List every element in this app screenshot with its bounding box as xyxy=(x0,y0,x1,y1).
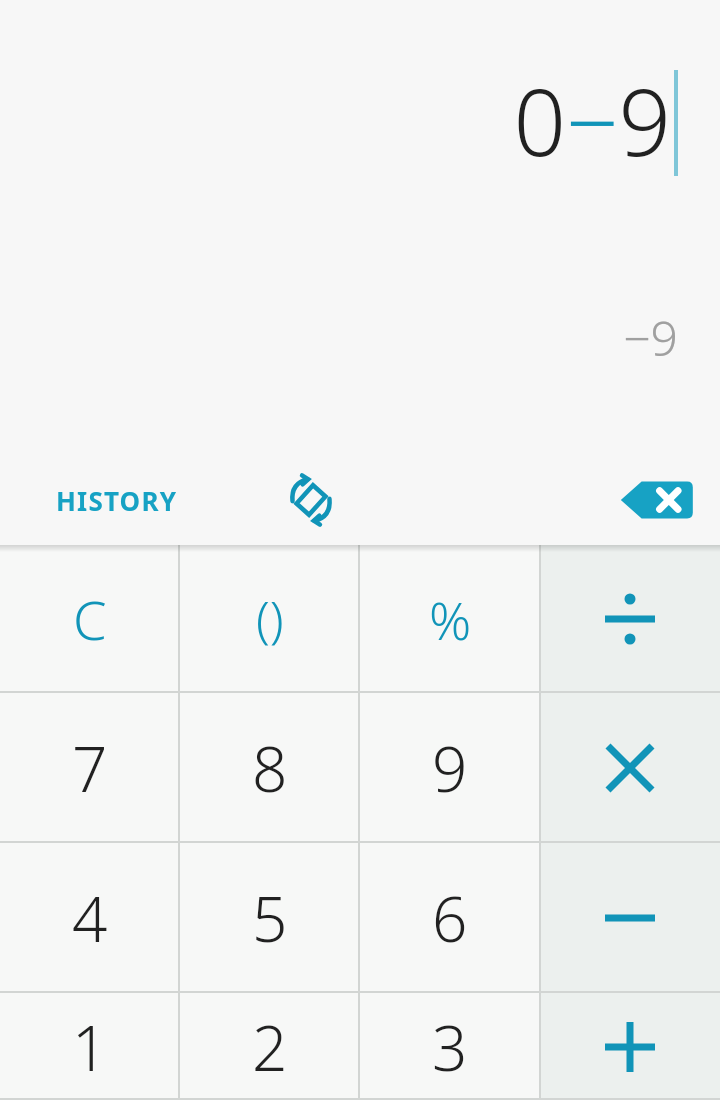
button[interactable]: () xyxy=(180,545,360,693)
staticText: 3 xyxy=(432,1005,468,1089)
button[interactable]: % xyxy=(360,545,540,693)
button[interactable]: HISTORY xyxy=(30,469,204,532)
button[interactable]: 9 xyxy=(360,693,540,843)
staticText: 6 xyxy=(432,876,468,960)
button[interactable]: C xyxy=(0,545,180,693)
button[interactable]: 7 xyxy=(0,693,180,843)
staticText: 0−9 xyxy=(513,58,671,183)
staticText: 9 xyxy=(432,726,468,810)
staticText: 7 xyxy=(72,726,108,810)
staticText: 5 xyxy=(252,876,288,960)
staticText: 2 xyxy=(252,1005,288,1089)
button[interactable]: Rotate screen xyxy=(272,461,350,539)
button[interactable]: 8 xyxy=(180,693,360,843)
staticText: C xyxy=(73,582,107,656)
button[interactable] xyxy=(540,843,720,993)
staticText: 8 xyxy=(252,726,288,810)
button[interactable]: 5 xyxy=(180,843,360,993)
staticText: % xyxy=(429,584,472,655)
button[interactable]: 3 xyxy=(360,993,540,1100)
staticText: () xyxy=(256,585,284,653)
button[interactable]: 1 xyxy=(0,993,180,1100)
button[interactable]: 6 xyxy=(360,843,540,993)
button[interactable] xyxy=(540,693,720,843)
button[interactable]: 4 xyxy=(0,843,180,993)
staticText: −9 xyxy=(623,305,678,370)
staticText: HISTORY xyxy=(56,483,178,518)
staticText: 4 xyxy=(72,876,108,960)
button[interactable]: Backspace xyxy=(614,458,698,542)
staticText: 1 xyxy=(72,1005,108,1089)
button[interactable]: 2 xyxy=(180,993,360,1100)
button[interactable] xyxy=(540,545,720,693)
button[interactable] xyxy=(540,993,720,1100)
